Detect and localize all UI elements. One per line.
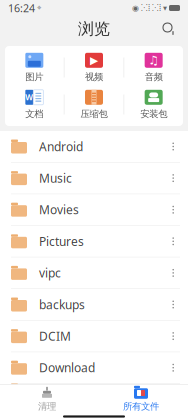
staticText: ▾: [163, 3, 167, 13]
button[interactable]: Pictures: [0, 226, 188, 257]
staticText: ▶: [90, 54, 98, 66]
staticText: ⁙⁞: [141, 3, 150, 13]
staticText: vipc: [39, 265, 61, 281]
staticText: Music: [39, 170, 72, 186]
button[interactable]: Download: [0, 352, 188, 384]
staticText: ⌖: [35, 4, 42, 12]
staticText: ◉: [132, 3, 139, 13]
staticText: 图片: [25, 71, 43, 83]
staticText: W: [25, 92, 33, 103]
staticText: Notifications: [39, 382, 109, 398]
button[interactable]: vipc: [0, 257, 188, 289]
staticText: Pictures: [39, 233, 84, 249]
button[interactable]: 所有文件: [94, 385, 188, 413]
button[interactable]: 清理: [0, 385, 94, 413]
staticText: 16:24: [8, 1, 35, 15]
staticText: 所有文件: [123, 401, 159, 412]
button[interactable]: DCIM: [0, 321, 188, 352]
button[interactable]: Notifications: [0, 375, 188, 407]
staticText: ♫: [148, 53, 159, 67]
staticText: 视频: [85, 71, 103, 83]
button[interactable]: Music: [0, 163, 188, 194]
button[interactable]: W: [5, 86, 64, 123]
button[interactable]: Android: [0, 131, 188, 163]
staticText: 文档: [25, 108, 43, 120]
staticText: 浏览: [78, 19, 110, 39]
staticText: 压缩包: [80, 108, 107, 120]
button[interactable]: backups: [0, 289, 188, 321]
button[interactable]: 安装包: [124, 86, 183, 123]
staticText: Download: [39, 360, 95, 376]
staticText: 安装包: [140, 108, 167, 120]
staticText: DCIM: [39, 328, 71, 344]
staticText: ⁙⁞: [152, 3, 161, 13]
button[interactable]: Search: [156, 16, 182, 42]
staticText: Android: [39, 138, 83, 154]
staticText: Movies: [39, 202, 79, 218]
button[interactable]: ▶: [65, 49, 123, 86]
button[interactable]: 压缩包: [65, 86, 123, 123]
staticText: 清理: [38, 401, 56, 412]
staticText: 音频: [145, 71, 163, 83]
button[interactable]: ♫: [124, 49, 183, 86]
button[interactable]: 图片: [5, 49, 64, 86]
button[interactable]: Movies: [0, 194, 188, 226]
staticText: backups: [39, 296, 85, 312]
